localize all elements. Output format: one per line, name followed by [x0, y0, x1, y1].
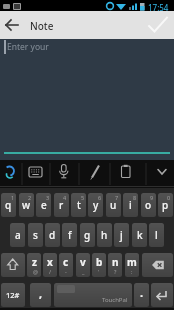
- staticText: ?: [114, 268, 117, 275]
- staticText: :: [131, 268, 133, 275]
- button[interactable]: q: [1, 193, 16, 217]
- staticText: 1: [11, 194, 15, 201]
- button[interactable]: [142, 253, 173, 277]
- staticText: n: [112, 255, 119, 269]
- staticText: s: [33, 228, 38, 242]
- button[interactable]: r: [54, 193, 69, 217]
- button[interactable]: [151, 283, 173, 307]
- button[interactable]: [114, 161, 138, 187]
- staticText: ': [98, 268, 100, 275]
- button[interactable]: v: [76, 253, 90, 277]
- staticText: 17:54: [148, 2, 169, 13]
- button[interactable]: h: [97, 223, 112, 247]
- button[interactable]: [84, 161, 108, 187]
- staticText: TouchPal: [102, 296, 128, 304]
- staticText: v: [80, 255, 86, 269]
- staticText: 9: [150, 194, 154, 201]
- button[interactable]: [150, 161, 174, 187]
- staticText: l: [155, 228, 158, 242]
- staticText: e: [41, 198, 47, 212]
- staticText: k: [137, 228, 143, 242]
- staticText: 0: [167, 194, 171, 201]
- staticText: 7: [115, 194, 119, 201]
- staticText: u: [110, 198, 117, 212]
- staticText: t: [77, 198, 81, 212]
- button[interactable]: i: [123, 193, 138, 217]
- staticText: i: [129, 198, 132, 212]
- button[interactable]: s: [28, 223, 43, 247]
- button[interactable]: n: [108, 253, 122, 277]
- staticText: d: [49, 228, 56, 242]
- button[interactable]: [0, 161, 23, 187]
- staticText: o: [145, 198, 152, 212]
- staticText: 4: [63, 194, 67, 201]
- staticText: h: [101, 228, 108, 242]
- button[interactable]: y: [88, 193, 103, 217]
- staticText: _: [82, 268, 85, 275]
- button[interactable]: e: [36, 193, 51, 217]
- button[interactable]: a: [10, 223, 25, 247]
- button[interactable]: l: [149, 223, 164, 247]
- staticText: /: [49, 268, 52, 275]
- button[interactable]: [52, 161, 76, 187]
- staticText: 5: [81, 194, 85, 201]
- staticText: @: [33, 268, 38, 275]
- button[interactable]: [144, 14, 170, 36]
- staticText: j: [120, 228, 123, 242]
- button[interactable]: w: [19, 193, 34, 217]
- button[interactable]: [0, 39, 174, 160]
- button[interactable]: f: [62, 223, 77, 247]
- button[interactable]: 12#: [1, 283, 25, 307]
- button[interactable]: b: [92, 253, 106, 277]
- staticText: g: [84, 228, 91, 242]
- staticText: a: [15, 228, 21, 242]
- button[interactable]: m: [125, 253, 139, 277]
- button[interactable]: d: [45, 223, 60, 247]
- staticText: .: [140, 285, 144, 300]
- staticText: p: [162, 198, 169, 212]
- button[interactable]: x: [43, 253, 57, 277]
- button[interactable]: [1, 253, 25, 277]
- button[interactable]: k: [132, 223, 147, 247]
- staticText: y: [93, 198, 99, 212]
- staticText: ,: [39, 286, 43, 301]
- button[interactable]: u: [106, 193, 121, 217]
- button[interactable]: t: [71, 193, 86, 217]
- button[interactable]: z: [27, 253, 41, 277]
- staticText: m: [127, 255, 137, 269]
- staticText: b: [96, 255, 103, 269]
- staticText: f: [68, 228, 72, 242]
- staticText: q: [5, 198, 12, 212]
- button[interactable]: TouchPal: [54, 283, 132, 307]
- button[interactable]: p: [158, 193, 173, 217]
- button[interactable]: j: [114, 223, 129, 247]
- button[interactable]: ,: [30, 283, 51, 307]
- button[interactable]: [24, 161, 48, 187]
- staticText: Enter your: [7, 41, 49, 53]
- staticText: r: [59, 198, 64, 212]
- staticText: 8: [133, 194, 137, 201]
- staticText: -: [65, 268, 67, 275]
- staticText: 3: [46, 194, 50, 201]
- button[interactable]: c: [59, 253, 73, 277]
- staticText: 6: [98, 194, 102, 201]
- staticText: x: [47, 255, 53, 269]
- button[interactable]: o: [141, 193, 156, 217]
- staticText: c: [63, 255, 69, 269]
- button[interactable]: g: [80, 223, 95, 247]
- staticText: Note: [30, 19, 54, 33]
- staticText: w: [22, 198, 31, 212]
- button[interactable]: [2, 15, 24, 35]
- staticText: z: [32, 255, 37, 269]
- staticText: 2: [28, 194, 32, 201]
- staticText: 12#: [6, 290, 20, 300]
- button[interactable]: .: [134, 283, 149, 307]
